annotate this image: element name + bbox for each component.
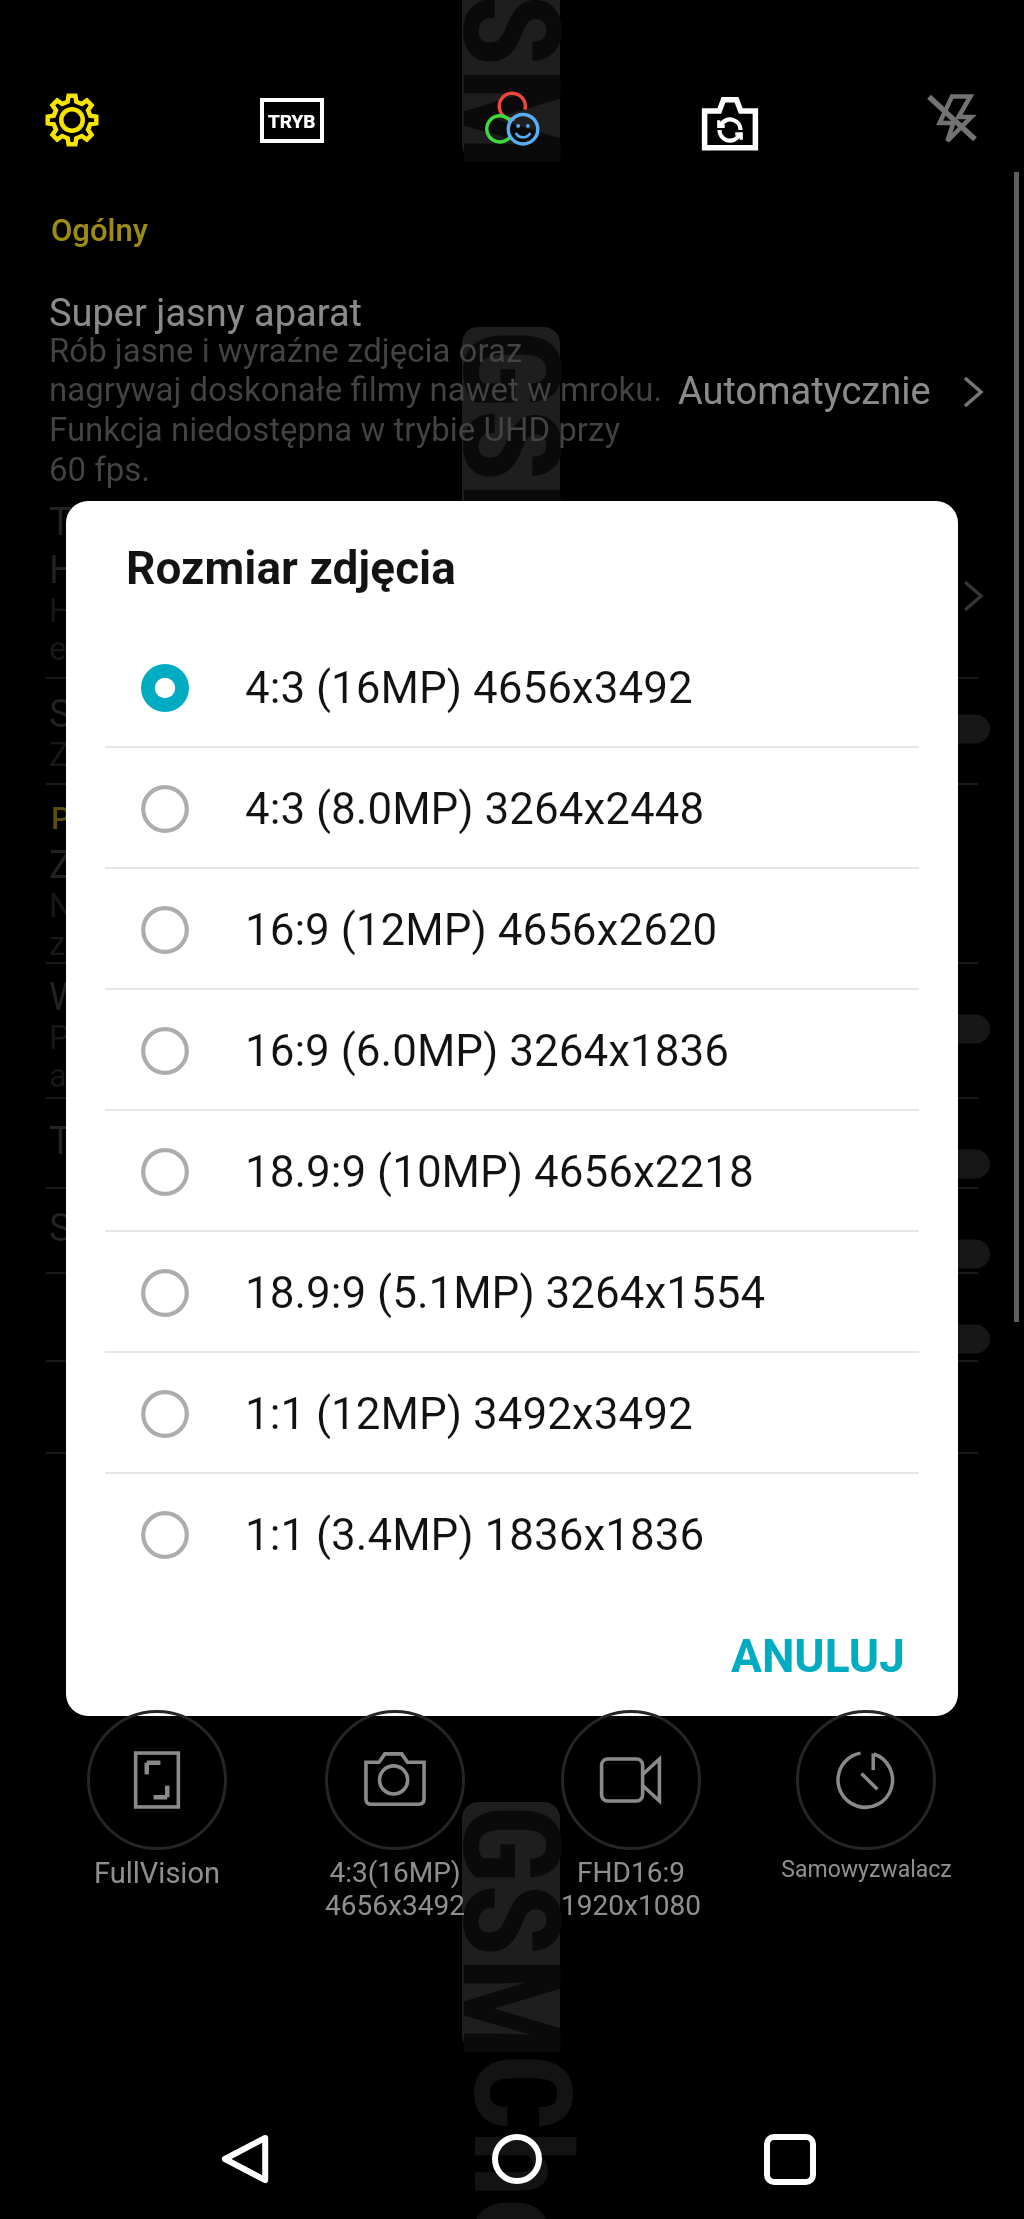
staticText: GSM — [431, 329, 590, 586]
staticText: 16:9 (6.0MP) 3264x1836 — [245, 1025, 729, 1077]
staticText: Samowyzwalacz — [781, 1856, 952, 1883]
staticText: Choice — [421, 2053, 601, 2219]
staticText: 16:9 (12MP) 4656x2620 — [245, 904, 718, 956]
staticText: ANULUJ — [731, 1629, 905, 1683]
button[interactable]: 18.9:9 (5.1MP) 3264x1554 — [66, 1232, 958, 1353]
button[interactable]: Toggle — [895, 1138, 990, 1190]
staticText: Rozmiar zdjęcia — [126, 541, 456, 595]
staticText: GSM — [431, 1804, 590, 2061]
staticText: Steruj głosem — [49, 1206, 283, 1251]
button[interactable]: Flash off — [929, 95, 975, 141]
button[interactable]: Toggle — [895, 1228, 990, 1280]
staticText: 4:3 (8.0MP) 3264x2448 — [245, 783, 705, 835]
button[interactable]: Samowyzwalacz — [748, 1710, 984, 1940]
staticText: Tryb nocny — [49, 500, 234, 545]
button[interactable]: 18.9:9 (10MP) 4656x2218 — [66, 1111, 958, 1232]
staticText: TRYB — [268, 110, 316, 132]
staticText: Automatycznie — [678, 369, 931, 414]
staticText: Ogólny — [51, 212, 148, 248]
button[interactable]: ANULUJ — [708, 1616, 928, 1696]
staticText: 1:1 (3.4MP) 1836x1836 — [245, 1509, 705, 1561]
staticText: ekspozycję zdjęć. — [49, 629, 307, 668]
staticText: HDR — [49, 548, 125, 593]
staticText: Rób jasne i wyraźne zdjęcia oraz nagrywa… — [49, 331, 663, 489]
button[interactable]: Toggle — [895, 1313, 990, 1365]
staticText: Zmniejsza drgania podczas nagrywania. — [49, 735, 638, 774]
button[interactable]: Home — [485, 2127, 549, 2191]
staticText: Profesjonalny — [51, 800, 242, 836]
button[interactable]: 4:3 (16MP) 4656x3492 — [66, 627, 958, 748]
staticText: Super jasny aparat — [49, 291, 362, 336]
staticText: Tryb selfie lustrzane — [49, 1119, 388, 1164]
staticText: 4:3(16MP) — [329, 1856, 461, 1889]
staticText: a także w wyrównaniu obrazu. — [49, 1056, 489, 1095]
staticText: 4:3 (16MP) 4656x3492 — [245, 662, 693, 714]
staticText: HDR automatycznie dopasowuje jasność i — [49, 591, 664, 630]
staticText: Znacznik geograficzny — [49, 843, 428, 888]
staticText: 1920x1080 — [561, 1889, 701, 1922]
button[interactable]: Back — [214, 2127, 278, 2191]
button[interactable]: Switch camera — [703, 96, 757, 150]
staticText: 4656x3492 — [325, 1889, 465, 1922]
button[interactable]: Toggle — [895, 1003, 990, 1055]
button[interactable]: 1:1 (12MP) 3492x3492 — [66, 1353, 958, 1474]
staticText: Wyświetl siatkę — [49, 975, 311, 1020]
button[interactable]: Settings — [47, 95, 97, 145]
staticText: GSM — [431, 0, 590, 171]
button[interactable]: 4:3 (8.0MP) 3264x2448 — [66, 748, 958, 869]
button[interactable]: Filters — [483, 88, 541, 146]
staticText: znaczniki lokalizacji. — [49, 924, 349, 963]
button[interactable]: 4:3(16MP) — [277, 1710, 513, 1940]
button[interactable]: Shooting mode — [262, 100, 322, 141]
button[interactable]: Recent apps — [757, 2126, 821, 2190]
staticText: FullVision — [94, 1856, 220, 1890]
button[interactable]: Toggle — [895, 703, 990, 755]
staticText: 18.9:9 (10MP) 4656x2218 — [245, 1146, 754, 1198]
staticText: FHD16:9 — [577, 1856, 685, 1889]
button[interactable]: FullVision — [39, 1710, 275, 1940]
button[interactable]: 16:9 (12MP) 4656x2620 — [66, 869, 958, 990]
staticText: Pomaga w kadrowaniu zdjęć i filmów, — [49, 1018, 597, 1057]
staticText: 18.9:9 (5.1MP) 3264x1554 — [245, 1267, 766, 1319]
button[interactable]: 1:1 (3.4MP) 1836x1836 — [66, 1474, 958, 1595]
button[interactable]: FHD16:9 — [513, 1710, 749, 1940]
staticText: Stabilizacja wideo — [49, 692, 354, 737]
staticText: Na zdjęciach i filmach zapisywane są — [49, 886, 594, 925]
button[interactable]: 16:9 (6.0MP) 3264x1836 — [66, 990, 958, 1111]
staticText: 1:1 (12MP) 3492x3492 — [245, 1388, 693, 1440]
